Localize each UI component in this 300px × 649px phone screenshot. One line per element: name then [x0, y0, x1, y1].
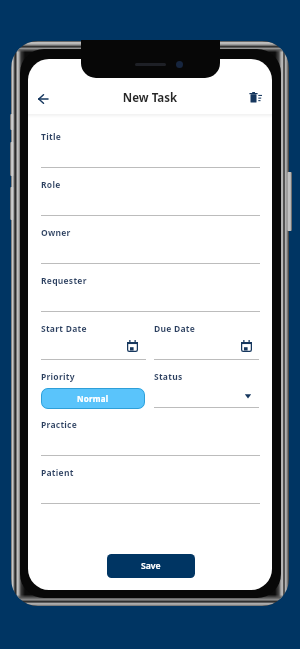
staticText: Practice [41, 419, 78, 431]
button[interactable]: Status dropdown [239, 388, 257, 406]
staticText: Patient [41, 467, 74, 479]
staticText: Start Date [41, 323, 87, 335]
staticText: Role [41, 179, 61, 191]
staticText: Priority [41, 371, 75, 383]
staticText: Status [154, 371, 183, 383]
staticText: Requester [41, 275, 87, 287]
staticText: Normal [77, 393, 109, 404]
button[interactable]: Pick due date [236, 335, 257, 356]
staticText: New Task [28, 90, 272, 106]
staticText: Save [141, 560, 161, 572]
button[interactable]: Delete [240, 82, 270, 112]
button[interactable]: Back [28, 84, 58, 114]
button[interactable]: Save [107, 554, 195, 578]
staticText: Owner [41, 227, 71, 239]
staticText: Title [41, 131, 61, 143]
button[interactable]: Normal [41, 388, 145, 409]
button[interactable]: Pick start date [122, 335, 143, 356]
staticText: Due Date [154, 323, 196, 335]
